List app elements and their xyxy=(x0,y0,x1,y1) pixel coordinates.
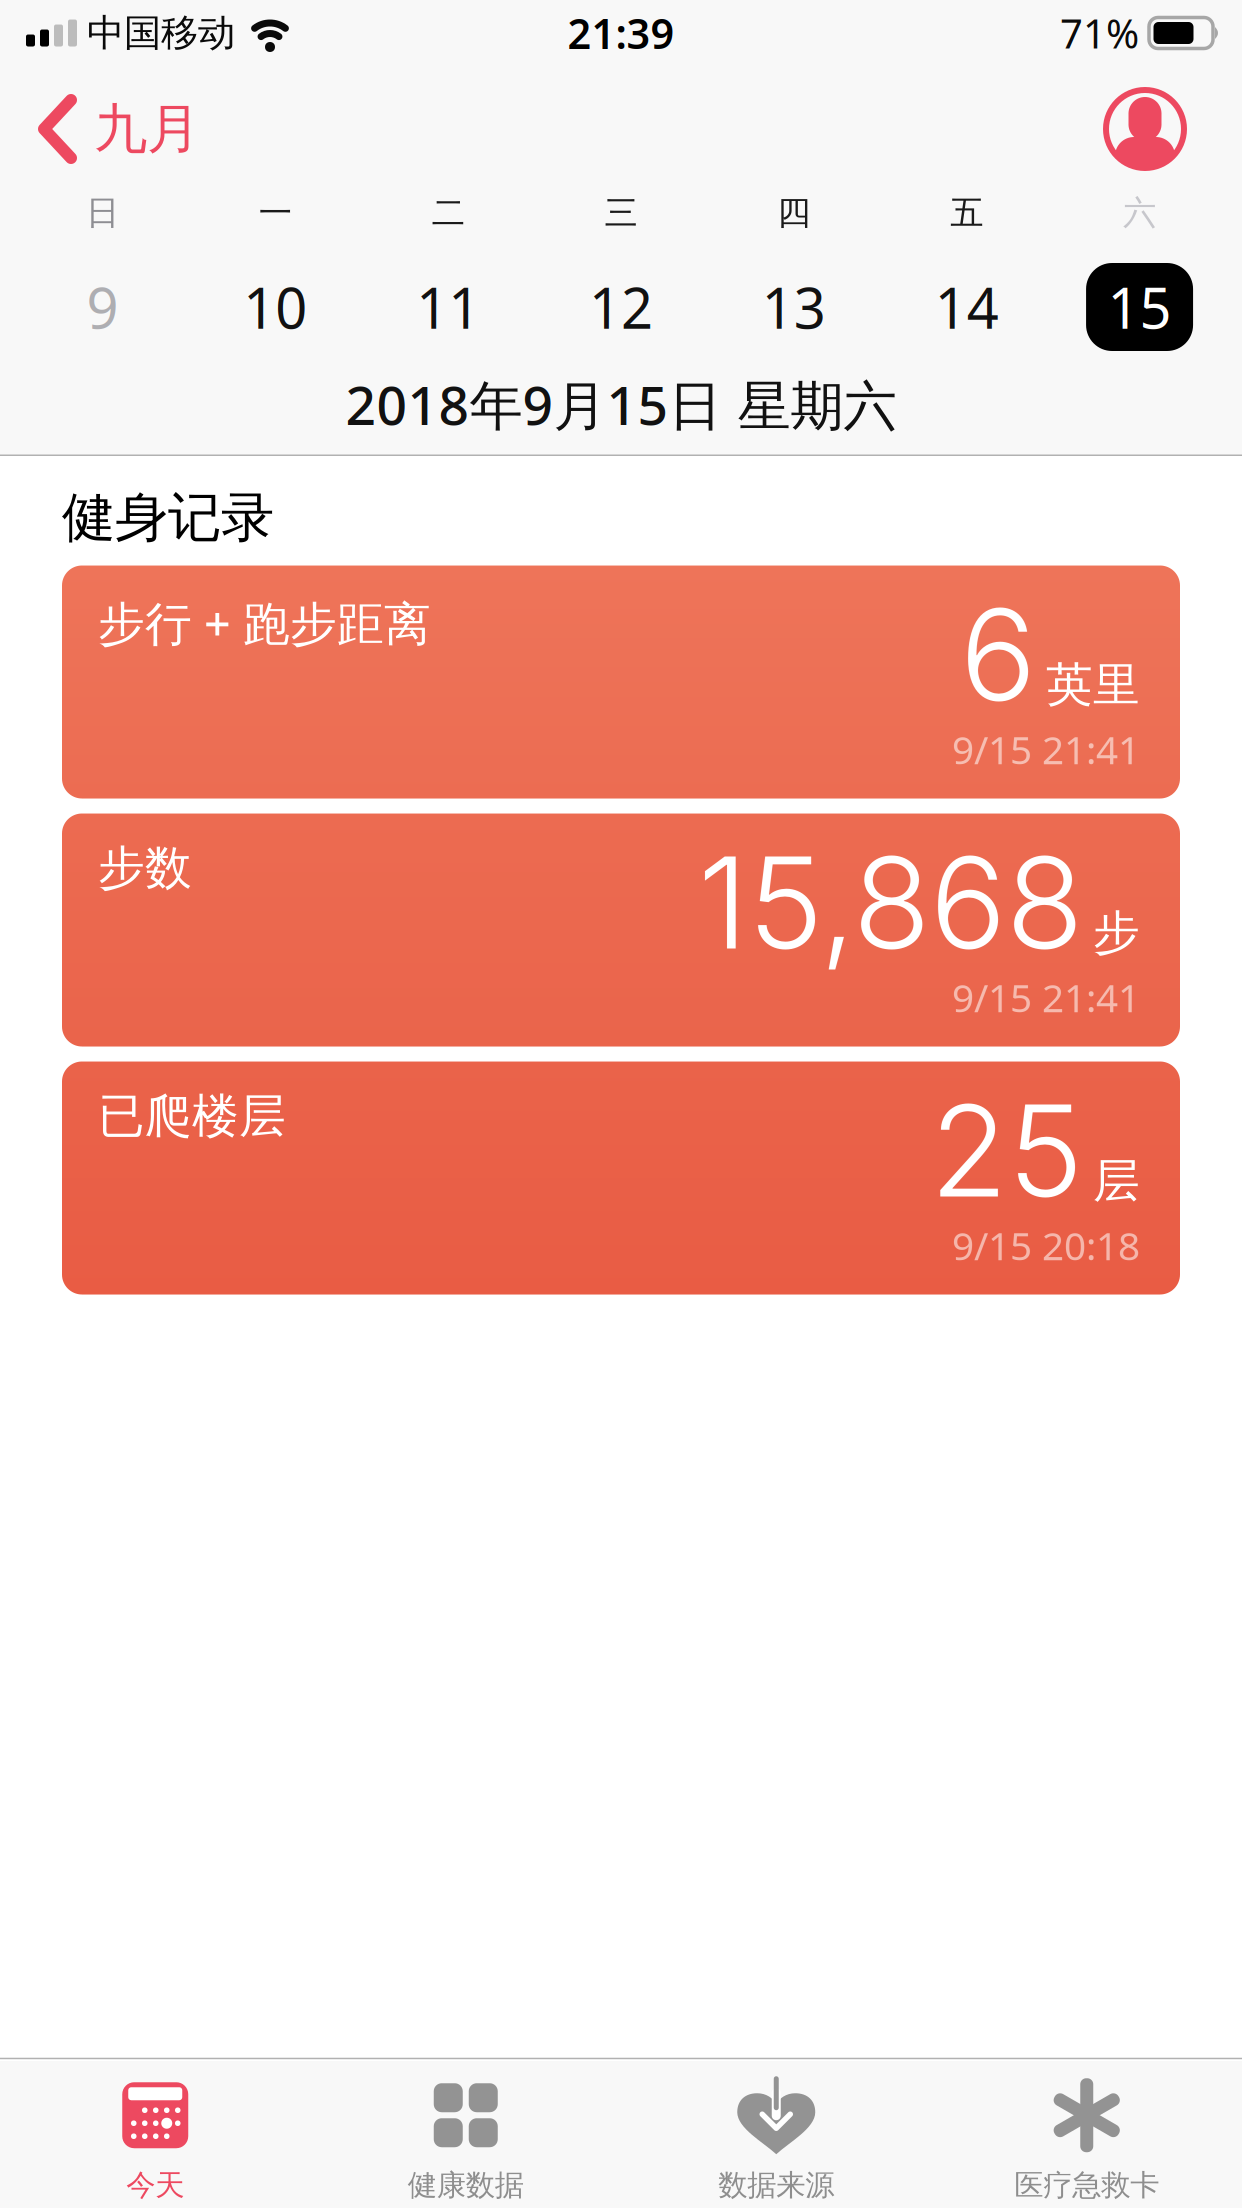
button[interactable]: 健康数据 xyxy=(310,2077,621,2203)
staticText: 15 xyxy=(1108,270,1172,344)
staticText: 中国移动 xyxy=(87,10,235,56)
staticText: 21:39 xyxy=(567,6,674,60)
button[interactable]: 已爬楼层 xyxy=(62,1061,1180,1294)
staticText: 步行 + 跑步距离 xyxy=(98,591,431,653)
staticText: 健身记录 xyxy=(62,485,274,550)
staticText: 四 xyxy=(777,192,810,233)
staticText: 25 xyxy=(930,1074,1083,1227)
staticText: 71% xyxy=(1060,6,1139,59)
staticText: 13 xyxy=(762,270,826,344)
staticText: 二 xyxy=(432,192,465,233)
staticText: 10 xyxy=(243,270,307,344)
button[interactable]: 个人资料 xyxy=(1106,90,1184,168)
staticText: 五 xyxy=(950,192,983,233)
staticText: 9/15 21:41 xyxy=(952,723,1140,775)
staticText: 步 xyxy=(1093,904,1140,962)
button[interactable]: 12 xyxy=(535,270,707,344)
staticText: 三 xyxy=(604,192,637,233)
staticText: 日 xyxy=(86,192,119,233)
staticText: 6 xyxy=(960,578,1036,731)
staticText: 9/15 20:18 xyxy=(952,1219,1140,1271)
staticText: 12 xyxy=(589,270,653,344)
button[interactable]: 数据来源 xyxy=(621,2077,931,2203)
staticText: 步数 xyxy=(98,839,192,897)
button[interactable]: 返回九月 xyxy=(38,96,200,162)
staticText: 九月 xyxy=(94,96,200,162)
staticText: 14 xyxy=(935,270,999,344)
staticText: 健康数据 xyxy=(408,2167,524,2203)
staticText: 9 xyxy=(86,270,118,344)
staticText: 六 xyxy=(1123,192,1156,233)
button[interactable]: 13 xyxy=(707,270,880,344)
staticText: 一 xyxy=(259,192,292,233)
staticText: 医疗急救卡 xyxy=(1014,2167,1159,2203)
button[interactable]: 15 xyxy=(1053,263,1226,351)
staticText: 15,868 xyxy=(698,826,1083,979)
button[interactable]: 步数 xyxy=(62,813,1180,1046)
staticText: 数据来源 xyxy=(718,2167,834,2203)
staticText: 9/15 21:41 xyxy=(952,971,1140,1023)
button[interactable]: 今天 xyxy=(0,2077,310,2203)
staticText: 已爬楼层 xyxy=(98,1087,286,1145)
staticText: 英里 xyxy=(1046,656,1140,714)
staticText: 11 xyxy=(416,270,480,344)
button[interactable]: 10 xyxy=(189,270,362,344)
button[interactable]: 医疗急救卡 xyxy=(931,2077,1242,2203)
staticText: 层 xyxy=(1093,1152,1140,1210)
button[interactable]: 步行 + 跑步距离 xyxy=(62,565,1180,798)
button[interactable]: 9 xyxy=(16,270,189,344)
staticText: 2018年9月15日 星期六 xyxy=(345,369,896,440)
button[interactable]: 14 xyxy=(880,270,1053,344)
button[interactable]: 11 xyxy=(362,270,535,344)
staticText: 今天 xyxy=(126,2167,184,2203)
